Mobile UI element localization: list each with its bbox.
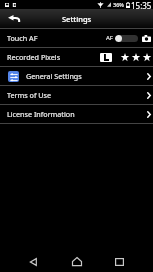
- staticText: AF: [106, 34, 113, 42]
- button[interactable]: General Settings: [0, 67, 153, 85]
- staticText: Terms of Use: [7, 90, 51, 100]
- staticText: Touch AF: [7, 33, 38, 43]
- button[interactable]: Home: [51, 251, 102, 272]
- button[interactable]: License Information: [0, 105, 153, 123]
- staticText: 36%: [113, 1, 124, 8]
- button[interactable]: Back: [0, 9, 22, 28]
- button[interactable]: Terms of Use: [0, 86, 153, 104]
- staticText: 15:35: [131, 0, 152, 9]
- staticText: General Settings: [26, 71, 82, 81]
- button[interactable]: Touch AF: [0, 29, 153, 47]
- button[interactable]: Back: [0, 251, 51, 272]
- staticText: Settings: [62, 14, 92, 24]
- button[interactable]: Touch AF toggle: [115, 35, 138, 42]
- other: Camera: [142, 35, 151, 42]
- staticText: Recorded Pixels: [7, 52, 61, 62]
- staticText: License Information: [7, 109, 75, 119]
- button[interactable]: Recorded Pixels: [0, 48, 153, 66]
- button[interactable]: Recents: [102, 251, 153, 272]
